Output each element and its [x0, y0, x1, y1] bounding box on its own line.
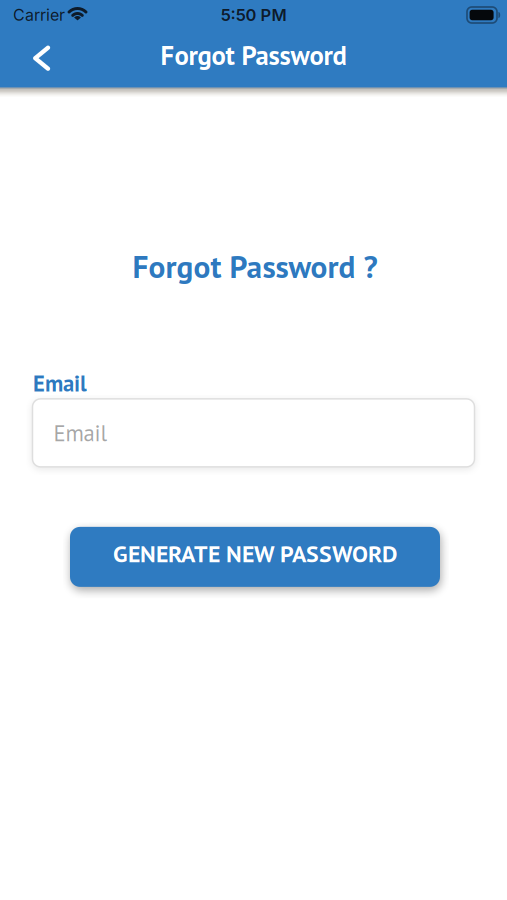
- button[interactable]: [0, 30, 64, 80]
- staticText: Carrier: [13, 5, 65, 25]
- staticText: Forgot Password ?: [132, 246, 377, 286]
- button[interactable]: GENERATE NEW PASSWORD: [70, 527, 440, 587]
- button[interactable]: Email: [32, 399, 474, 467]
- staticText: GENERATE NEW PASSWORD: [113, 538, 397, 569]
- staticText: Email: [53, 418, 107, 447]
- staticText: 5:50 PM: [220, 5, 286, 25]
- staticText: Forgot Password: [160, 38, 346, 72]
- staticText: Email: [33, 368, 87, 398]
